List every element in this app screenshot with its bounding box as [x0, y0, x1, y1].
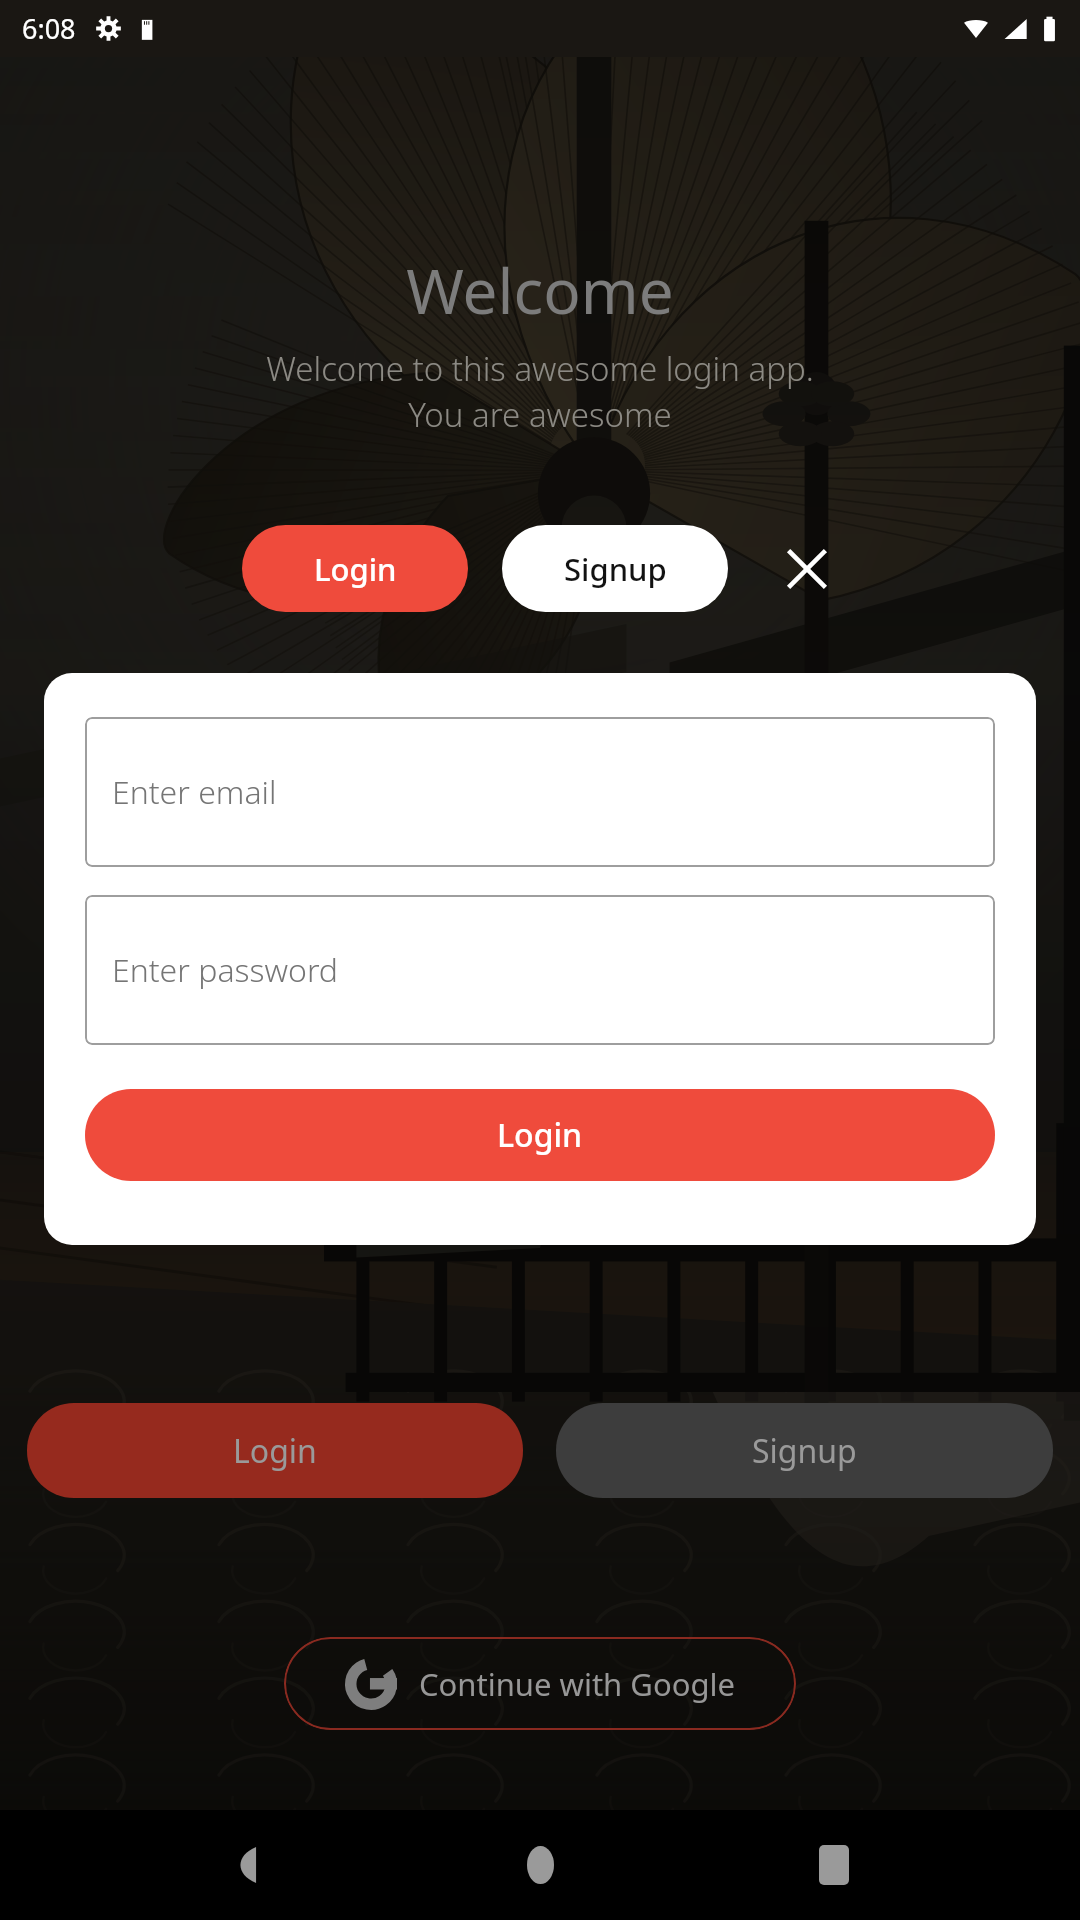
- staticText: Enter email: [112, 770, 277, 814]
- button[interactable]: Login: [242, 525, 468, 612]
- button[interactable]: Home: [492, 1817, 588, 1913]
- button[interactable]: Login: [27, 1403, 523, 1498]
- staticText: Welcome: [406, 248, 674, 332]
- staticText: Login: [314, 548, 397, 590]
- staticText: Login: [233, 1429, 317, 1473]
- button[interactable]: Back: [198, 1817, 294, 1913]
- button[interactable]: Continue with Google: [284, 1637, 796, 1730]
- staticText: Signup: [752, 1429, 857, 1473]
- staticText: Welcome to this awesome login app. You a…: [266, 346, 814, 437]
- staticText: 6:08: [22, 10, 76, 47]
- button[interactable]: Enter email: [85, 717, 995, 867]
- staticText: Signup: [564, 548, 667, 590]
- button[interactable]: Recent apps: [786, 1817, 882, 1913]
- staticText: Login: [497, 1113, 583, 1157]
- button[interactable]: Close: [776, 538, 838, 600]
- button[interactable]: Login: [85, 1089, 995, 1181]
- button[interactable]: Signup: [502, 525, 728, 612]
- staticText: Enter password: [112, 948, 339, 992]
- staticText: Continue with Google: [419, 1663, 735, 1705]
- button[interactable]: Enter password: [85, 895, 995, 1045]
- button[interactable]: Signup: [556, 1403, 1053, 1498]
